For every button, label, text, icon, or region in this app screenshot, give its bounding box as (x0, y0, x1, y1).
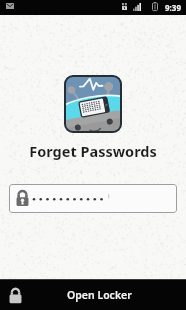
button[interactable]: Locked (0, 279, 186, 310)
button[interactable]: Forget Passwords app icon (64, 75, 122, 133)
staticText: 9:39 (165, 2, 181, 13)
other: Locked (9, 287, 22, 304)
staticText: Forget Passwords (0, 141, 186, 161)
button[interactable] (9, 184, 177, 213)
staticText: Open Locker (67, 288, 132, 302)
